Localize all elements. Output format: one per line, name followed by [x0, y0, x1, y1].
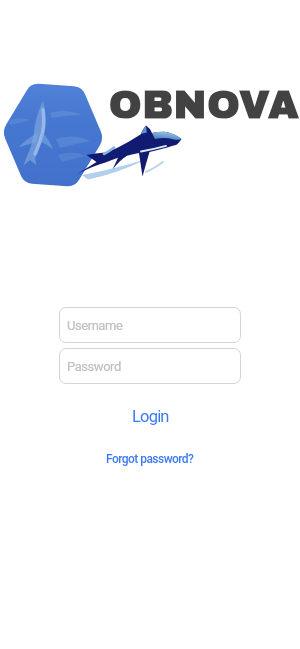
- button[interactable]: Forgot password?: [100, 449, 200, 469]
- staticText: OBNOVA: [109, 84, 300, 126]
- button[interactable]: Username: [59, 307, 241, 343]
- button[interactable]: Login: [124, 403, 177, 430]
- staticText: Username: [67, 318, 123, 333]
- staticText: Password: [67, 359, 121, 374]
- staticText: Forgot password?: [106, 452, 194, 466]
- button[interactable]: Password: [59, 348, 241, 384]
- staticText: Login: [132, 407, 169, 426]
